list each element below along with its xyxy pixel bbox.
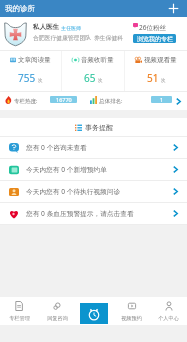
button[interactable]: Reminders: [80, 303, 108, 324]
staticText: 回复咨询: [47, 315, 68, 322]
staticText: 养生保健科: [94, 34, 123, 41]
staticText: 今天内您有 0 个待执行视频问诊: [26, 187, 121, 196]
button[interactable]: 视频观看量: [125, 51, 187, 91]
staticText: 次: [161, 78, 166, 84]
staticText: 个人中心: [158, 315, 179, 322]
staticText: 合肥医疗健康管理团队: [33, 34, 91, 41]
staticText: 音频收听量: [81, 56, 114, 64]
staticText: 视频观看量: [144, 56, 177, 64]
staticText: 51: [147, 71, 159, 85]
staticText: 755: [18, 71, 36, 85]
staticText: 总体排名:: [99, 97, 123, 105]
staticText: 视频预约: [121, 315, 142, 322]
button[interactable]: 今天内您有 0 个待执行视频问诊: [0, 181, 187, 202]
staticText: 私人医生: [33, 23, 59, 31]
staticText: 文章阅读量: [18, 56, 51, 64]
staticText: 主任医师: [61, 25, 81, 31]
button[interactable]: 专栏管理: [0, 297, 38, 325]
button[interactable]: 浏览我的专栏: [133, 34, 176, 43]
button[interactable]: 个人中心: [150, 297, 187, 325]
button[interactable]: 文章阅读量: [0, 51, 61, 91]
staticText: 今天内您有 0 个新增预约单: [26, 165, 107, 174]
staticText: 您有 0 个咨询未查看: [26, 143, 87, 152]
staticText: 事务提醒: [85, 123, 113, 132]
staticText: 浏览我的专栏: [137, 35, 173, 43]
staticText: 次: [98, 78, 103, 84]
button[interactable]: Add: [167, 2, 180, 15]
staticText: 次: [38, 78, 43, 84]
button[interactable]: 事务提醒: [0, 118, 187, 136]
staticText: 专栏热度:: [14, 97, 38, 105]
staticText: 您有 0 条血压预警提示，请点击查看: [26, 209, 134, 218]
staticText: 专栏管理: [9, 315, 30, 322]
staticText: 26位粉丝: [139, 23, 166, 32]
button[interactable]: 音频收听量: [62, 51, 124, 91]
staticText: 16770: [56, 96, 72, 103]
button[interactable]: 专栏热度:: [0, 92, 187, 110]
button[interactable]: 您有 0 条血压预警提示，请点击查看: [0, 203, 187, 224]
button[interactable]: 今天内您有 0 个新增预约单: [0, 159, 187, 180]
button[interactable]: 视频预约: [113, 297, 150, 325]
staticText: 1: [160, 96, 164, 103]
button[interactable]: 私人医生: [0, 17, 187, 50]
staticText: 65: [84, 71, 96, 85]
staticText: 我的诊所: [5, 4, 35, 13]
button[interactable]: 您有 0 个咨询未查看: [0, 137, 187, 158]
button[interactable]: 回复咨询: [38, 297, 76, 325]
